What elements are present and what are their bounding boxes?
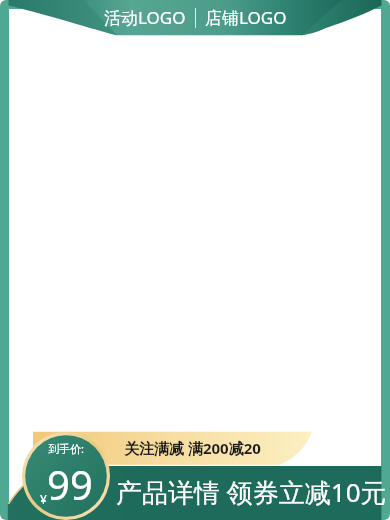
staticText: 到手价:	[48, 441, 84, 456]
button[interactable]: 到手价 99 元	[22, 432, 110, 520]
staticText: 99	[47, 457, 93, 511]
staticText: ¥	[40, 491, 47, 507]
staticText: 活动LOGO	[104, 6, 186, 29]
staticText: 店铺LOGO	[205, 6, 287, 29]
button[interactable]: 关注满减 满200减20	[0, 428, 390, 466]
staticText: 关注满减 满200减20	[124, 438, 261, 458]
staticText: 产品详情 领券立减10元	[116, 474, 387, 510]
button[interactable]: 活动LOGO	[0, 0, 390, 40]
button[interactable]: 产品详情 领券立减10元	[0, 466, 390, 520]
